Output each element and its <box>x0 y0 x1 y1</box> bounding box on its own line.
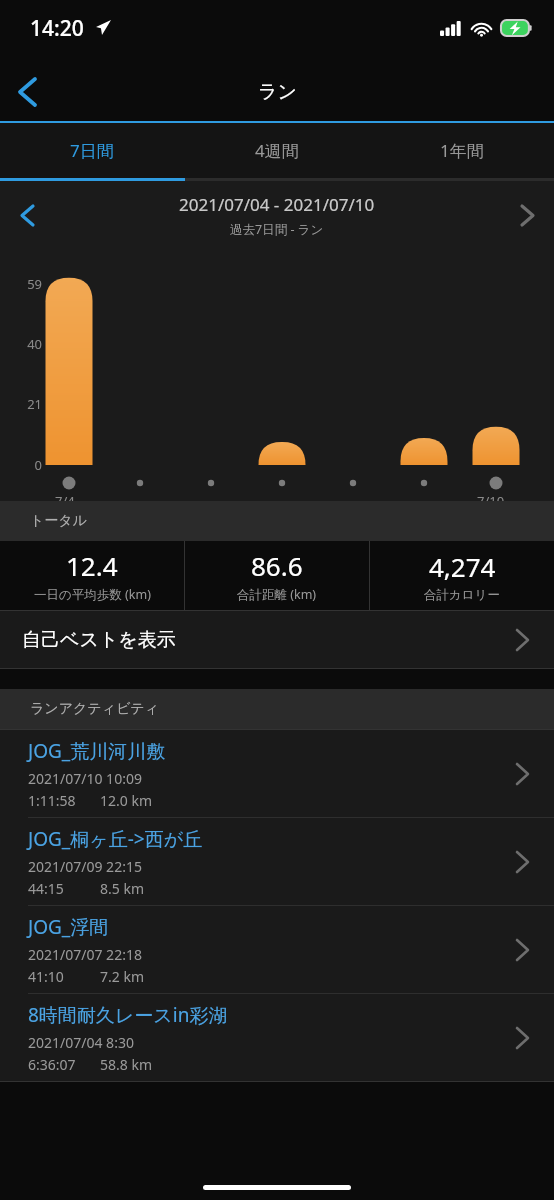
staticText: 2021/07/04 - 2021/07/10 <box>179 193 375 216</box>
staticText: JOG_浮間 <box>28 914 109 940</box>
staticText: 7/10 <box>477 492 505 510</box>
staticText: 7日間 <box>70 139 114 162</box>
button[interactable]: 1年間 <box>369 123 554 178</box>
staticText: 8.5 km <box>100 879 144 898</box>
button[interactable]: 4週間 <box>184 123 369 178</box>
staticText: トータル <box>30 512 87 530</box>
staticText: JOG_桐ヶ丘->西が丘 <box>28 826 203 852</box>
button[interactable]: 自己ベストを表示 <box>0 611 554 668</box>
staticText: ラン <box>258 80 297 104</box>
staticText: 59 <box>6 275 42 293</box>
button[interactable]: Previous period <box>2 190 52 240</box>
staticText: 8時間耐久レースin彩湖 <box>28 1002 228 1028</box>
button[interactable]: Next period <box>502 190 552 240</box>
staticText: 2021/07/07 22:18 <box>28 945 142 964</box>
button[interactable]: 8時間耐久レースin彩湖 <box>0 994 554 1081</box>
staticText: 40 <box>6 335 42 353</box>
staticText: 12.0 km <box>100 791 152 810</box>
button[interactable]: 7日間 <box>0 123 184 178</box>
staticText: 14:20 <box>30 14 84 43</box>
staticText: 1:11:58 <box>28 791 76 810</box>
staticText: 自己ベストを表示 <box>22 628 176 652</box>
staticText: 一日の平均歩数 (km) <box>34 586 151 603</box>
staticText: 過去7日間 - ラン <box>230 221 324 238</box>
staticText: 58.8 km <box>100 1055 152 1074</box>
staticText: 2021/07/10 10:09 <box>28 769 142 788</box>
staticText: 86.6 <box>251 548 303 583</box>
staticText: 7.2 km <box>100 967 144 986</box>
staticText: 4週間 <box>255 139 299 162</box>
staticText: 合計カロリー <box>424 587 500 603</box>
staticText: 41:10 <box>28 967 64 986</box>
staticText: JOG_荒川河川敷 <box>28 738 166 764</box>
staticText: 4,274 <box>429 549 496 584</box>
staticText: 7/4 <box>55 492 75 510</box>
staticText: 21 <box>6 395 42 413</box>
staticText: 2021/07/09 22:15 <box>28 857 142 876</box>
button[interactable]: Back <box>0 65 54 119</box>
staticText: 12.4 <box>66 548 118 583</box>
button[interactable]: JOG_荒川河川敷 <box>0 730 554 817</box>
staticText: 6:36:07 <box>28 1055 76 1074</box>
staticText: 44:15 <box>28 879 64 898</box>
staticText: 1年間 <box>440 139 484 162</box>
staticText: 合計距離 (km) <box>237 586 317 603</box>
button[interactable]: JOG_浮間 <box>0 906 554 993</box>
button[interactable]: JOG_桐ヶ丘->西が丘 <box>0 818 554 905</box>
staticText: 2021/07/04 8:30 <box>28 1033 134 1052</box>
staticText: 0 <box>6 456 42 474</box>
staticText: ランアクティビティ <box>30 700 159 718</box>
